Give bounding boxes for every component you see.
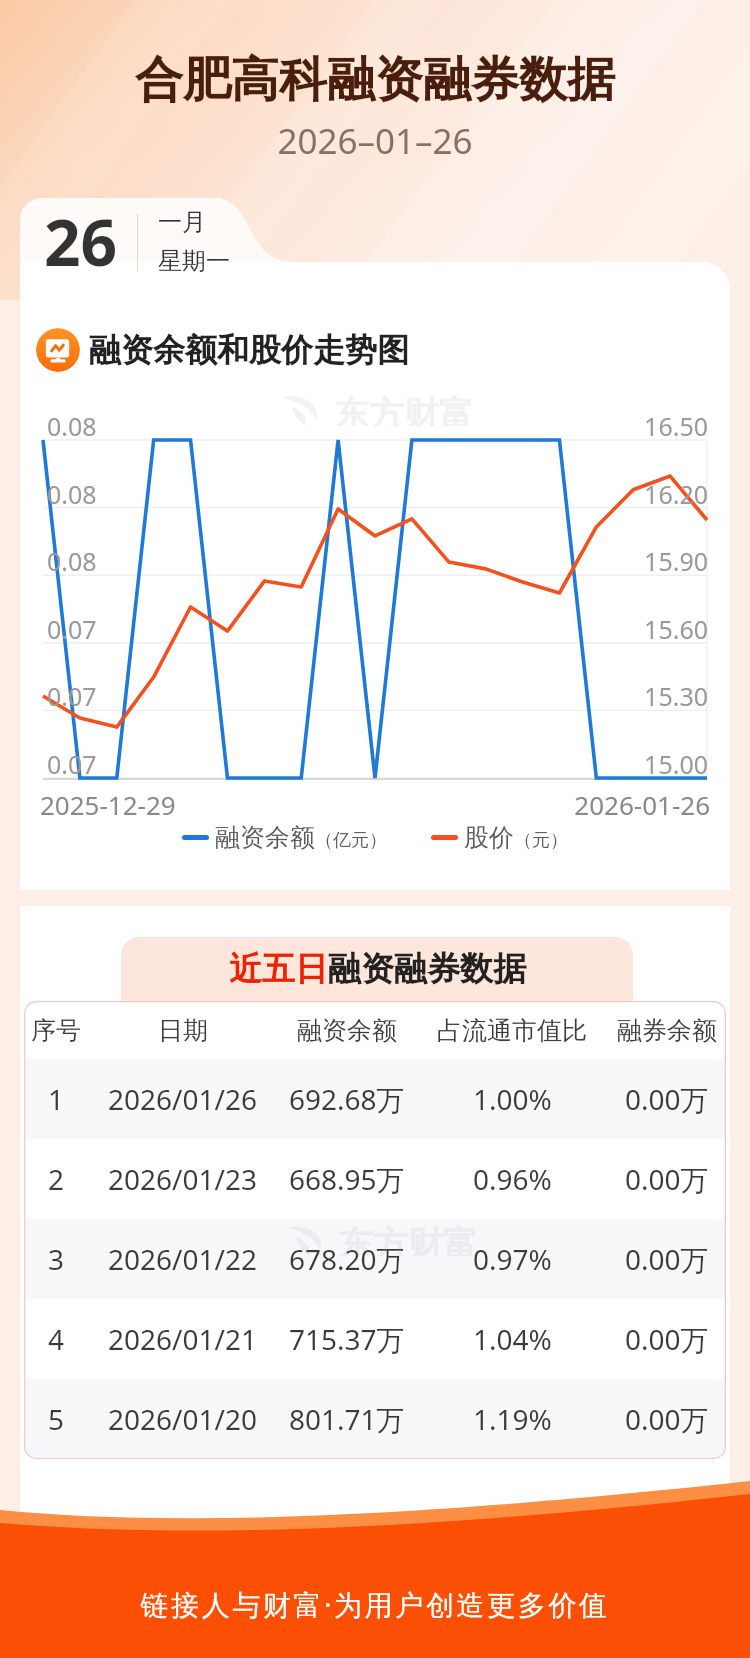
staticText: 2026/01/26 xyxy=(108,1080,257,1118)
staticText: 序号 xyxy=(31,1015,81,1046)
staticText: 近五日融资融券数据 xyxy=(229,948,526,990)
staticText: 801.71万 xyxy=(289,1400,405,1438)
staticText: 东方财富 xyxy=(334,392,474,426)
staticText: 16.50 xyxy=(628,409,708,443)
staticText: 1.04% xyxy=(473,1320,552,1358)
staticText: 0.00万 xyxy=(625,1240,709,1278)
button[interactable]: 股价（元） xyxy=(431,822,568,852)
staticText: 一月 xyxy=(158,207,206,237)
staticText: 692.68万 xyxy=(289,1080,405,1118)
staticText: 2026-01-26 xyxy=(540,787,710,822)
button[interactable]: 3 xyxy=(24,1219,726,1299)
staticText: 融券余额 xyxy=(617,1015,717,1046)
button[interactable]: 2 xyxy=(24,1139,726,1219)
staticText: 2026/01/22 xyxy=(108,1240,257,1278)
staticText: 3 xyxy=(48,1240,65,1278)
other: 融资余额和股价走势图 xyxy=(36,328,80,372)
staticText: 2026/01/21 xyxy=(108,1320,257,1358)
staticText: 0.96% xyxy=(473,1160,552,1198)
staticText: 2 xyxy=(48,1160,65,1198)
staticText: 5 xyxy=(48,1400,65,1438)
staticText: 1.19% xyxy=(473,1400,552,1438)
staticText: 0.00万 xyxy=(625,1080,709,1118)
staticText: 668.95万 xyxy=(289,1160,405,1198)
staticText: 715.37万 xyxy=(289,1320,405,1358)
staticText: 15.00 xyxy=(628,747,708,781)
staticText: 2026/01/23 xyxy=(108,1160,257,1198)
staticText: 15.90 xyxy=(628,544,708,578)
staticText: 15.60 xyxy=(628,612,708,646)
button[interactable]: 26 xyxy=(20,198,270,285)
button[interactable]: 近五日融资融券数据 xyxy=(121,937,633,1001)
staticText: 1.00% xyxy=(473,1080,552,1118)
button[interactable]: 融资余额和股价走势图 xyxy=(36,328,409,372)
staticText: 1 xyxy=(48,1080,65,1118)
staticText: 东方财富 xyxy=(338,1222,478,1256)
staticText: 日期 xyxy=(158,1015,208,1046)
button[interactable]: 5 xyxy=(24,1379,726,1459)
button[interactable]: 1 xyxy=(24,1059,726,1139)
staticText: 合肥高科融资融券数据 xyxy=(0,50,750,110)
staticText: 0.08 xyxy=(47,409,97,443)
staticText: 0.00万 xyxy=(625,1320,709,1358)
staticText: 0.97% xyxy=(473,1240,552,1278)
staticText: 0.00万 xyxy=(625,1160,709,1198)
staticText: 0.00万 xyxy=(625,1400,709,1438)
staticText: 0.07 xyxy=(47,612,97,646)
staticText: 融资余额和股价走势图 xyxy=(89,330,409,370)
staticText: 4 xyxy=(48,1320,65,1358)
staticText: 16.20 xyxy=(628,477,708,511)
staticText: 15.30 xyxy=(628,679,708,713)
staticText: 2026/01/20 xyxy=(108,1400,257,1438)
staticText: 2026–01–26 xyxy=(0,117,750,165)
staticText: 融资余额 xyxy=(297,1015,397,1046)
staticText: 占流通市值比 xyxy=(437,1015,587,1046)
staticText: 0.07 xyxy=(47,747,97,781)
staticText: 星期一 xyxy=(158,246,230,276)
staticText: 股价（元） xyxy=(464,822,568,852)
button[interactable]: 4 xyxy=(24,1299,726,1379)
staticText: 融资余额（亿元） xyxy=(215,822,387,852)
staticText: 678.20万 xyxy=(289,1240,405,1278)
staticText: 0.07 xyxy=(47,679,97,713)
button[interactable]: 链接人与财富·为用户创造更多价值 xyxy=(0,1575,750,1623)
staticText: 26 xyxy=(44,198,118,285)
staticText: 0.08 xyxy=(47,477,97,511)
staticText: 0.08 xyxy=(47,544,97,578)
staticText: 2025-12-29 xyxy=(40,787,176,822)
button[interactable]: 融资余额（亿元） xyxy=(182,822,387,852)
